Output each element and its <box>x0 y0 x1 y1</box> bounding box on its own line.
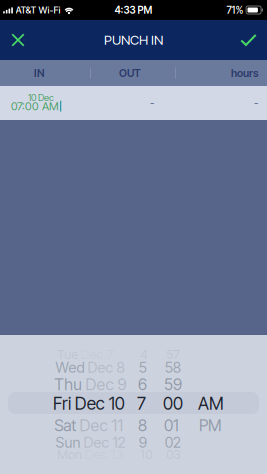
staticText: Tue <box>57 347 78 362</box>
staticText: IN <box>34 66 45 79</box>
staticText: Mon <box>57 447 82 462</box>
staticText: 5 <box>139 359 147 376</box>
button[interactable]: OUT <box>79 60 181 86</box>
staticText: - <box>150 96 154 109</box>
staticText: 07:00 AM <box>11 99 59 113</box>
staticText: 8 <box>138 416 147 435</box>
staticText: Fri <box>53 393 71 414</box>
staticText: Dec 11 <box>80 416 124 435</box>
staticText: AT&T Wi-Fi <box>15 4 60 16</box>
staticText: 02 <box>165 434 181 451</box>
staticText: 4 <box>140 347 148 362</box>
staticText: 10 Dec <box>28 92 54 103</box>
staticText: 71% <box>227 4 244 16</box>
staticText: Dec 8 <box>87 359 124 376</box>
staticText: Dec 12 <box>83 434 125 451</box>
staticText: Dec 10 <box>75 393 125 414</box>
staticText: 9 <box>139 434 147 451</box>
staticText: 03 <box>166 447 180 462</box>
button[interactable]: Save <box>230 20 267 60</box>
staticText: AM <box>198 393 224 414</box>
button[interactable]: Cancel <box>0 20 36 60</box>
staticText: 59 <box>164 375 182 394</box>
staticText: Wed <box>55 359 84 376</box>
staticText: Dec 13 <box>85 447 123 462</box>
staticText: Sun <box>55 434 80 451</box>
staticText: Dec 9 <box>86 375 127 394</box>
staticText: 7 <box>137 393 146 414</box>
button[interactable]: IN <box>0 60 79 86</box>
staticText: OUT <box>119 66 141 79</box>
staticText: 4:33 PM <box>114 4 152 16</box>
staticText: 57 <box>166 347 180 362</box>
staticText: 00 <box>163 393 183 414</box>
staticText: 6 <box>138 375 147 394</box>
staticText: PUNCH IN <box>104 32 163 48</box>
staticText: Thu <box>54 375 82 394</box>
staticText: 01 <box>164 416 179 435</box>
staticText: PM <box>199 416 222 435</box>
staticText: hours <box>231 66 258 79</box>
staticText: - <box>254 96 258 109</box>
staticText: 58 <box>165 359 181 376</box>
staticText: 10 <box>140 447 152 462</box>
staticText: Sat <box>54 416 76 435</box>
